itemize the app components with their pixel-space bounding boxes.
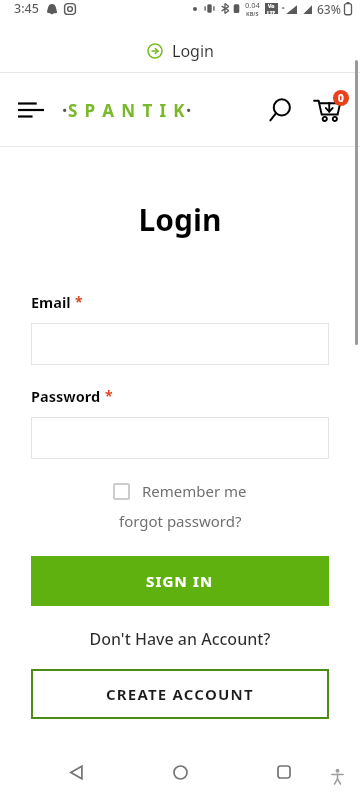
button[interactable]: [31, 323, 329, 365]
staticText: ·: [186, 97, 192, 123]
button[interactable]: Search: [260, 90, 300, 130]
staticText: Login: [0, 199, 360, 240]
staticText: 0: [338, 91, 344, 105]
staticText: Email: [31, 292, 71, 312]
staticText: ·: [62, 97, 68, 123]
staticText: S P A N T I K: [68, 99, 186, 122]
button[interactable]: ·: [62, 97, 192, 123]
staticText: CREATE ACCOUNT: [106, 684, 254, 704]
button[interactable]: Recent apps: [264, 752, 304, 792]
button[interactable]: forgot password?: [111, 508, 250, 534]
staticText: Don't Have an Account?: [0, 628, 360, 650]
button[interactable]: Remember me: [109, 477, 251, 505]
staticText: 3:45: [14, 0, 39, 17]
staticText: *: [105, 386, 113, 405]
staticText: Remember me: [142, 481, 247, 501]
staticText: 63%: [317, 1, 341, 17]
staticText: Vo: [268, 3, 275, 10]
button[interactable]: [31, 417, 329, 459]
button[interactable]: Login: [137, 36, 224, 66]
button[interactable]: SIGN IN: [31, 556, 329, 606]
staticText: KB/S: [246, 10, 259, 17]
button[interactable]: Cart, 0 items: [306, 89, 348, 131]
staticText: 0.04: [245, 0, 260, 10]
staticText: *: [75, 292, 83, 311]
button[interactable]: Back: [56, 752, 96, 792]
button[interactable]: Accessibility: [320, 759, 354, 793]
staticText: Password: [31, 386, 101, 406]
staticText: Login: [172, 40, 214, 62]
staticText: LTE: [267, 10, 276, 14]
button[interactable]: Menu: [12, 91, 50, 129]
staticText: SIGN IN: [146, 571, 214, 591]
button[interactable]: Home: [160, 752, 200, 792]
button[interactable]: CREATE ACCOUNT: [31, 669, 329, 719]
